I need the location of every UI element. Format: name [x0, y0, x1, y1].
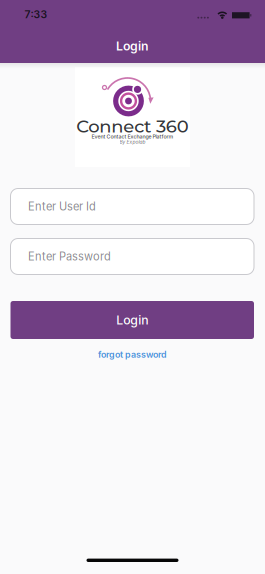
- staticText: Enter Password: [28, 250, 111, 263]
- staticText: Connect 360: [81, 116, 184, 136]
- button[interactable]: Enter Password: [10, 238, 254, 274]
- staticText: Enter User Id: [28, 200, 96, 213]
- staticText: Login: [116, 313, 148, 327]
- button[interactable]: Enter User Id: [10, 188, 254, 224]
- button[interactable]: Login: [10, 301, 254, 339]
- staticText: By Expolab: [119, 139, 145, 145]
- staticText: forgot password: [98, 349, 167, 360]
- staticText: 7:33: [24, 8, 47, 21]
- button[interactable]: forgot password: [98, 349, 167, 360]
- staticText: Event Contact Exchange Platform: [91, 133, 173, 140]
- staticText: Login: [116, 39, 149, 53]
